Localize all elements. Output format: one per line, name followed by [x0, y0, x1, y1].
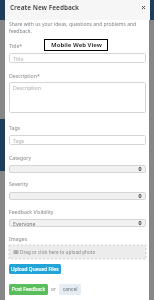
staticText: Create New Feedback: [10, 3, 80, 12]
staticText: Feedback Visibility: [9, 208, 54, 215]
staticText: or: [51, 286, 56, 293]
button[interactable]: Tags: [9, 135, 146, 145]
button[interactable]: Everyone: [9, 219, 146, 227]
staticText: Post Feedback: [12, 286, 46, 293]
staticText: Tags: [9, 124, 21, 131]
staticText: cancel: [63, 286, 78, 293]
staticText: Everyone: [13, 220, 36, 227]
staticText: Severity: [9, 180, 29, 187]
staticText: Mobile Web View: [51, 41, 102, 49]
button[interactable]: Title: [9, 53, 146, 63]
button[interactable]: cancel: [59, 284, 81, 295]
button[interactable]: Upload Queued Files: [9, 264, 61, 274]
staticText: Title*: [9, 42, 23, 49]
button[interactable]: Post Feedback: [9, 284, 48, 295]
staticText: Drag or click here to upload photo: [20, 249, 96, 255]
staticText: Tags: [13, 137, 25, 144]
staticText: Share with us your ideas, questions and …: [9, 21, 142, 34]
staticText: Description*: [9, 72, 40, 79]
button[interactable]: [9, 165, 146, 173]
staticText: Category: [9, 154, 32, 161]
staticText: Upload Queued Files: [11, 266, 59, 273]
staticText: Description: [13, 84, 41, 91]
staticText: Title: [13, 55, 24, 62]
button[interactable]: [9, 192, 146, 200]
button[interactable]: Description: [9, 82, 146, 113]
button[interactable]: Close: [138, 2, 148, 12]
button[interactable]: Drag or click here to upload photo: [9, 245, 146, 259]
staticText: Images: [9, 235, 28, 242]
